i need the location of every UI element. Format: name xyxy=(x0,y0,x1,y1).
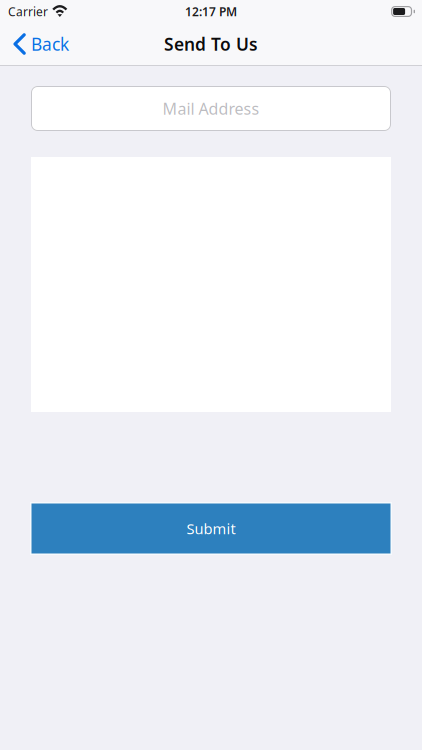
button[interactable]: Submit xyxy=(30,502,392,555)
staticText: Submit xyxy=(186,519,235,538)
staticText: 12:17 PM xyxy=(185,3,237,19)
staticText: Send To Us xyxy=(164,32,258,55)
button[interactable]: Mail Address xyxy=(31,86,391,131)
staticText: Mail Address xyxy=(162,98,259,119)
staticText: Carrier xyxy=(8,3,48,19)
button[interactable]: Back xyxy=(0,24,79,64)
staticText: Back xyxy=(31,32,69,55)
